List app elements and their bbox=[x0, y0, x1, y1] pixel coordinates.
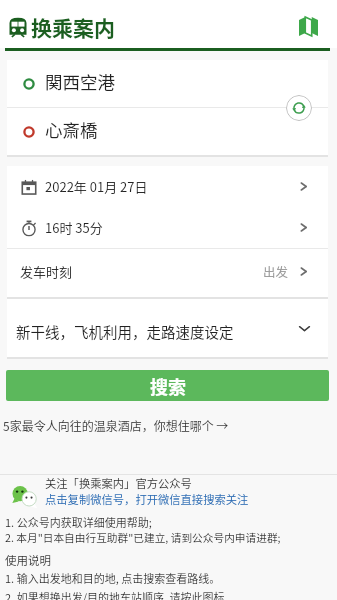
staticText: 关注「换乘案内」官方公众号 bbox=[45, 475, 192, 491]
button[interactable]: 新干线，飞机利用，走路速度设定 bbox=[7, 299, 328, 357]
staticText: 2. 如果想换出发/目的地车站顺序, 请按此图标 bbox=[5, 589, 225, 600]
staticText: 心斎橋 bbox=[45, 117, 98, 142]
staticText: 1. 公众号内获取详细使用帮助; bbox=[5, 514, 152, 530]
staticText: 5家最令人向往的温泉酒店，你想住哪个 → bbox=[3, 417, 229, 434]
staticText: 2022年 01月 27日 bbox=[45, 177, 148, 196]
staticText: 换乘案内 bbox=[31, 12, 115, 42]
button[interactable]: 2022年 01月 27日 bbox=[7, 166, 328, 207]
button[interactable]: Swap stations bbox=[286, 95, 312, 121]
staticText: 新干线，飞机利用，走路速度设定 bbox=[16, 321, 234, 342]
staticText: 2. 本月"日本自由行互助群"已建立, 请到公众号内申请进群; bbox=[5, 530, 281, 545]
staticText: 関西空港 bbox=[45, 69, 115, 94]
button[interactable]: 心斎橋 bbox=[7, 108, 328, 155]
button[interactable]: 関西空港 bbox=[7, 60, 328, 107]
button[interactable]: 点击复制微信号，打开微信直接搜索关注 bbox=[45, 491, 249, 507]
staticText: 16时 35分 bbox=[45, 218, 103, 237]
button[interactable]: 搜索 bbox=[6, 370, 329, 401]
staticText: 1. 输入出发地和目的地, 点击搜索查看路线。 bbox=[5, 570, 221, 586]
staticText: 出发 bbox=[263, 262, 289, 280]
staticText: 使用说明 bbox=[5, 552, 51, 569]
staticText: 搜索 bbox=[150, 373, 186, 399]
staticText: 点击复制微信号，打开微信直接搜索关注 bbox=[45, 491, 249, 507]
button[interactable]: 5家最令人向往的温泉酒店，你想住哪个 → bbox=[3, 417, 229, 434]
staticText: 发车时刻 bbox=[20, 262, 73, 281]
button[interactable]: 16时 35分 bbox=[7, 207, 328, 248]
button[interactable]: Map bbox=[292, 10, 324, 42]
button[interactable]: 发车时刻 bbox=[7, 249, 328, 293]
